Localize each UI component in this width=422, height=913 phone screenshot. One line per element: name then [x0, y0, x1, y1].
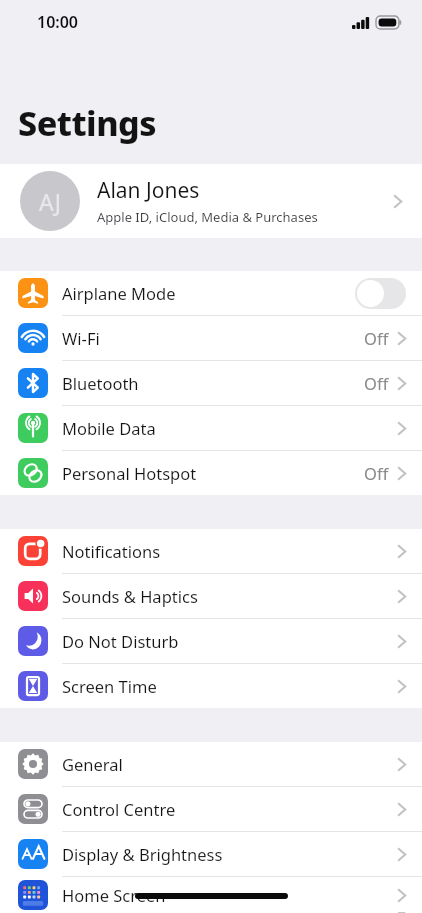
button[interactable]: Sounds & Haptics	[0, 574, 422, 619]
staticText: Notifications	[62, 540, 397, 562]
staticText: Bluetooth	[62, 372, 364, 394]
staticText: Alan Jones	[97, 176, 200, 205]
staticText: Mobile Data	[62, 417, 397, 439]
button[interactable]: Personal Hotspot	[0, 451, 422, 495]
staticText: Display & Brightness	[62, 843, 397, 865]
staticText: Sounds & Haptics	[62, 585, 397, 607]
staticText: Wi-Fi	[62, 327, 364, 349]
staticText: AJ	[39, 186, 62, 217]
button[interactable]: Airplane Mode toggle	[355, 278, 406, 309]
staticText: Screen Time	[62, 675, 397, 697]
staticText: 10:00	[37, 11, 79, 33]
staticText: Off	[364, 372, 389, 394]
button[interactable]: Mobile Data	[0, 406, 422, 451]
button[interactable]: Bluetooth	[0, 361, 422, 406]
button[interactable]: General	[0, 742, 422, 787]
button[interactable]: Wi-Fi	[0, 316, 422, 361]
staticText: Personal Hotspot	[62, 462, 364, 484]
button[interactable]: Display & Brightness	[0, 832, 422, 877]
staticText: Home Screen	[62, 884, 397, 906]
staticText: Control Centre	[62, 798, 397, 820]
staticText: Off	[364, 462, 389, 484]
button[interactable]: Control Centre	[0, 787, 422, 832]
button[interactable]: Notifications	[0, 529, 422, 574]
button[interactable]: Screen Time	[0, 664, 422, 708]
button[interactable]: Do Not Disturb	[0, 619, 422, 664]
staticText: Airplane Mode	[62, 282, 355, 304]
staticText: General	[62, 753, 397, 775]
staticText: Do Not Disturb	[62, 630, 397, 652]
button[interactable]: Home Screen	[0, 877, 422, 913]
staticText: Settings	[18, 100, 157, 146]
button[interactable]: AJ	[0, 164, 422, 238]
staticText: Off	[364, 327, 389, 349]
button[interactable]: Airplane Mode	[0, 271, 422, 316]
staticText: Apple ID, iCloud, Media & Purchases	[97, 208, 318, 226]
